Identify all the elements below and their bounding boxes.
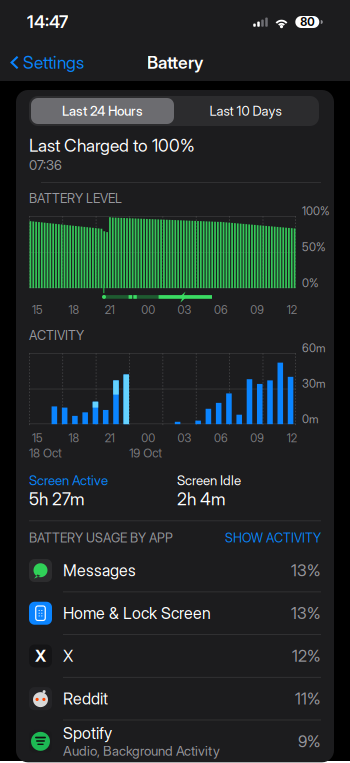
- staticText: Screen Idle: [177, 472, 241, 488]
- staticText: 9%: [298, 732, 321, 751]
- button[interactable]: Messages: [29, 549, 321, 592]
- staticText: Home & Lock Screen: [63, 604, 211, 623]
- staticText: 18 Oct: [29, 446, 62, 460]
- staticText: 13%: [291, 561, 321, 580]
- staticText: 14:47: [27, 11, 68, 32]
- staticText: Messages: [63, 561, 136, 580]
- button[interactable]: Settings: [0, 44, 94, 80]
- staticText: 18: [68, 431, 79, 445]
- staticText: 00: [141, 303, 155, 317]
- staticText: 06: [214, 431, 228, 445]
- staticText: 2h 4m: [177, 488, 226, 509]
- staticText: Last 10 Days: [209, 103, 281, 119]
- staticText: 03: [177, 303, 191, 317]
- staticText: 21: [105, 303, 115, 317]
- staticText: 100%: [302, 204, 330, 218]
- button[interactable]: Last 10 Days: [174, 98, 317, 124]
- staticText: Audio, Background Activity: [63, 743, 220, 759]
- staticText: 15: [32, 303, 43, 317]
- staticText: 80: [300, 15, 314, 29]
- staticText: 0%: [302, 276, 319, 290]
- staticText: 5h 27m: [29, 488, 85, 509]
- staticText: 06: [214, 303, 228, 317]
- button[interactable]: Spotify: [29, 720, 321, 762]
- staticText: 12: [287, 303, 297, 317]
- staticText: Battery: [147, 52, 203, 73]
- staticText: 12%: [292, 646, 321, 666]
- staticText: 0m: [302, 412, 319, 426]
- staticText: BATTERY USAGE BY APP: [29, 530, 173, 545]
- staticText: BATTERY LEVEL: [29, 191, 122, 206]
- staticText: 19 Oct: [129, 446, 162, 460]
- button[interactable]: Reddit: [29, 678, 321, 720]
- staticText: Spotify: [63, 724, 112, 743]
- staticText: 11%: [295, 689, 321, 708]
- staticText: 13%: [291, 604, 321, 623]
- staticText: 09: [250, 303, 264, 317]
- staticText: SHOW ACTIVITY: [225, 530, 321, 545]
- staticText: 21: [105, 431, 115, 445]
- staticText: 15: [32, 431, 43, 445]
- button[interactable]: Last 24 Hours: [31, 98, 174, 124]
- staticText: ACTIVITY: [29, 328, 84, 343]
- button[interactable]: SHOW ACTIVITY: [225, 530, 321, 545]
- staticText: X: [63, 646, 73, 666]
- staticText: 60m: [302, 341, 326, 355]
- staticText: 30m: [302, 377, 326, 390]
- staticText: 03: [177, 431, 191, 445]
- staticText: X: [35, 646, 46, 666]
- staticText: 12: [287, 431, 297, 445]
- staticText: 07:36: [29, 157, 62, 173]
- button[interactable]: Home & Lock Screen: [29, 592, 321, 635]
- staticText: Last 24 Hours: [62, 103, 143, 119]
- staticText: 18: [68, 303, 79, 317]
- staticText: Last Charged to 100%: [29, 135, 195, 156]
- staticText: 50%: [302, 240, 326, 254]
- staticText: 00: [141, 431, 155, 445]
- button[interactable]: X: [29, 635, 321, 678]
- staticText: Settings: [23, 52, 84, 73]
- staticText: Reddit: [63, 689, 108, 708]
- staticText: Screen Active: [29, 472, 108, 488]
- staticText: 09: [250, 431, 264, 445]
